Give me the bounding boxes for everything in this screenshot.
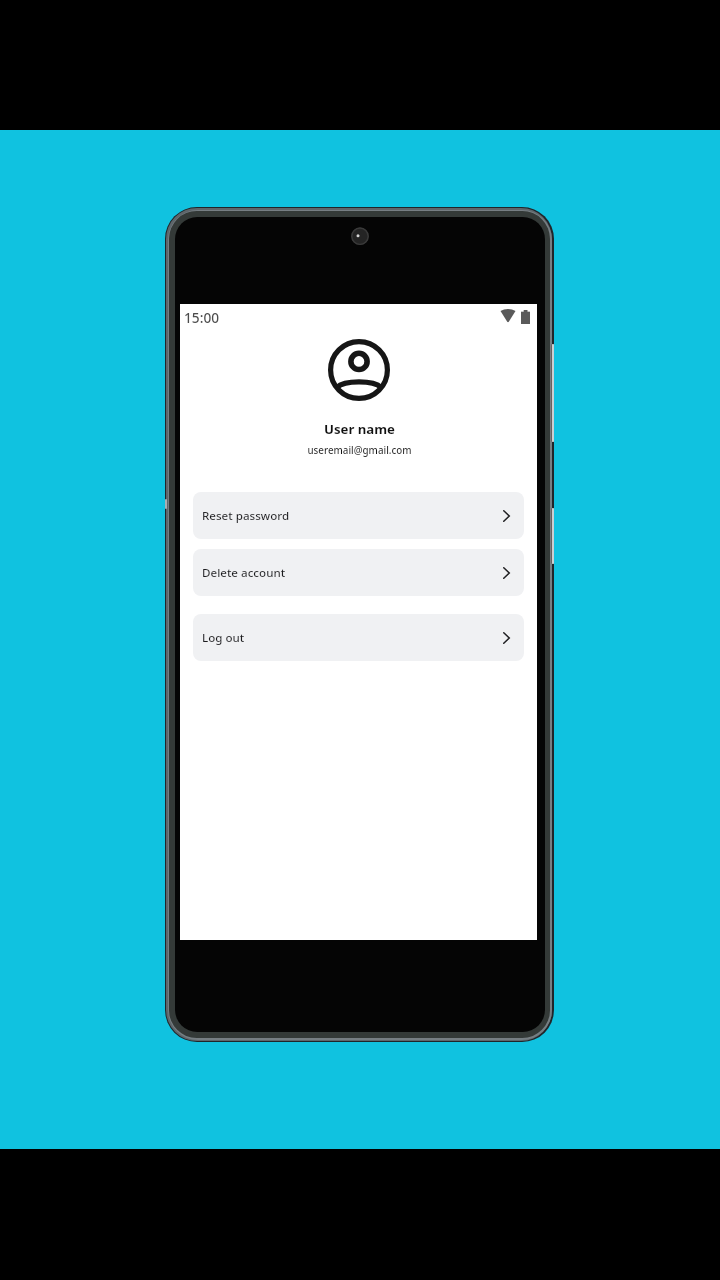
staticText: User name — [181, 420, 538, 438]
button[interactable]: Reset password — [193, 492, 524, 539]
staticText: useremail@gmail.com — [181, 444, 538, 457]
other: Battery full — [521, 310, 530, 324]
other: Profile picture — [326, 337, 392, 403]
staticText: Reset password — [202, 508, 290, 524]
staticText: 15:00 — [184, 308, 220, 327]
button[interactable]: Log out — [193, 614, 524, 661]
other: Wi-Fi signal — [500, 309, 516, 322]
staticText: Log out — [202, 630, 245, 646]
button[interactable]: Delete account — [193, 549, 524, 596]
staticText: Delete account — [202, 565, 286, 581]
